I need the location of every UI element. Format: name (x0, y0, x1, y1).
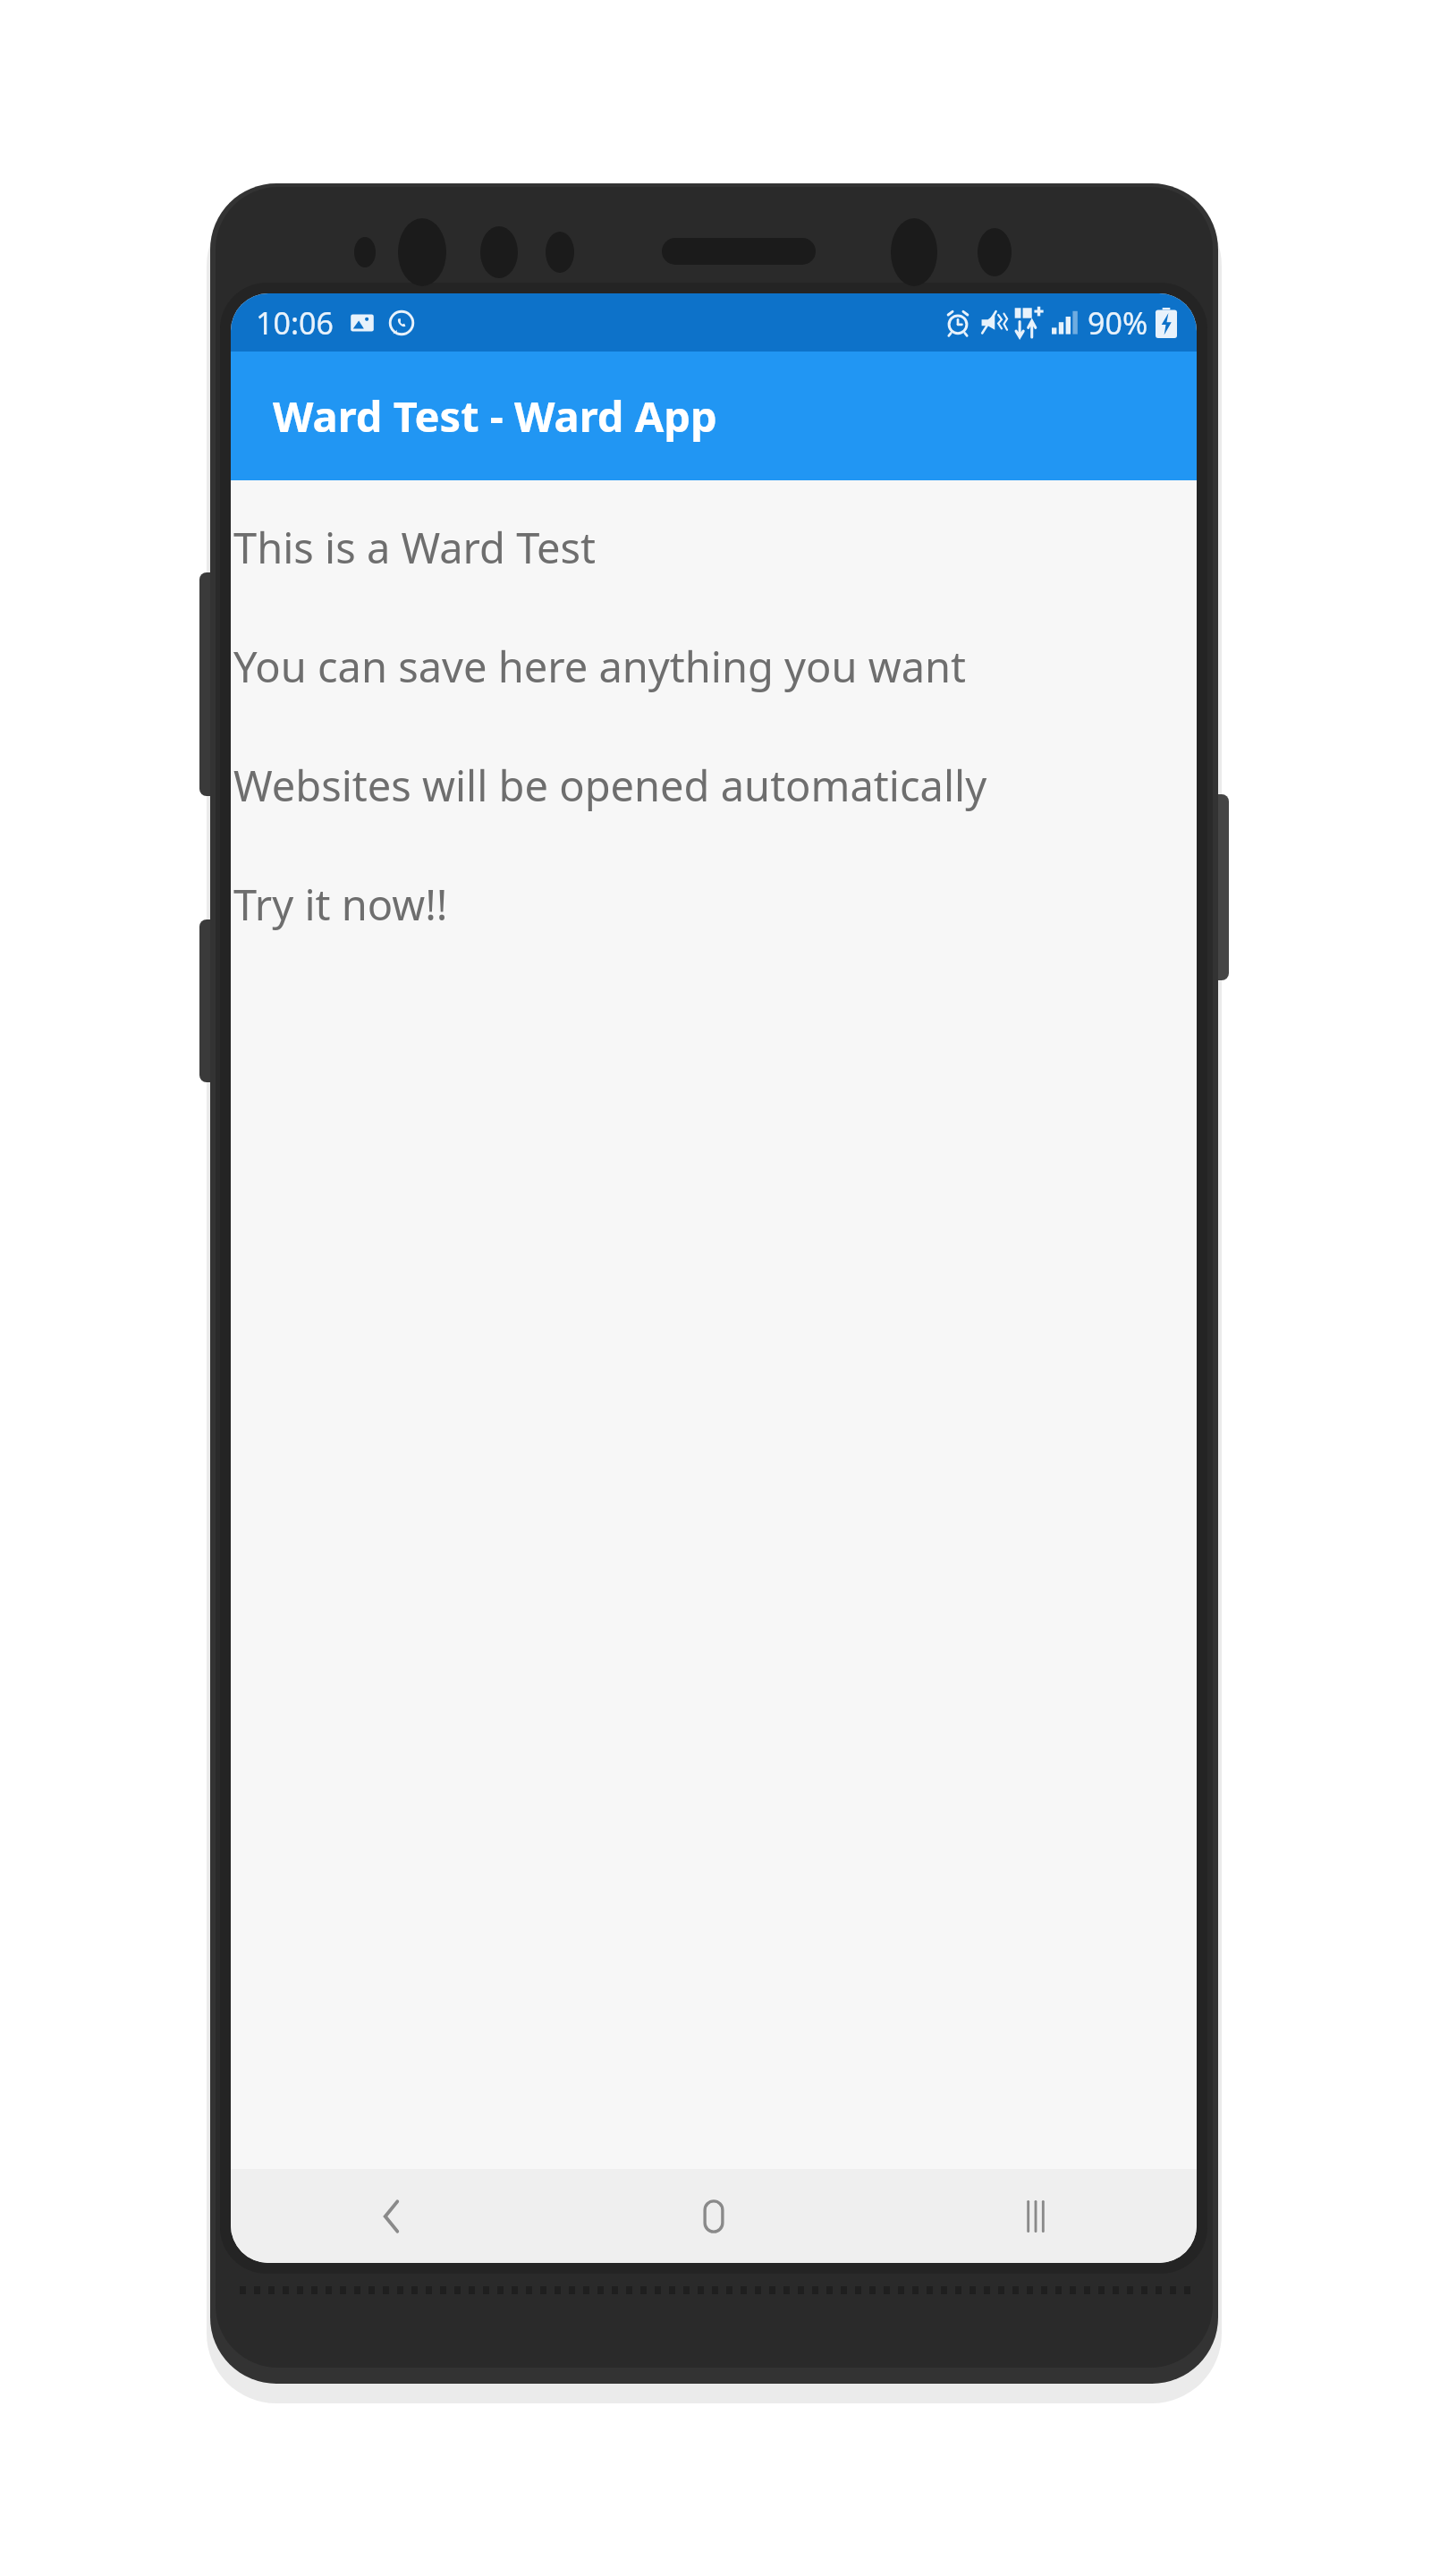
staticText: This is a Ward Test (233, 519, 597, 576)
staticText: Try it now!! (233, 876, 448, 933)
button[interactable]: This is a Ward Test (231, 487, 1197, 606)
button[interactable]: Recent apps (875, 2169, 1197, 2263)
staticText: 10:06 (256, 302, 334, 343)
button[interactable]: Home (553, 2169, 875, 2263)
staticText: Websites will be opened automatically (233, 757, 987, 814)
button[interactable]: Try it now!! (231, 844, 1197, 963)
button[interactable]: Websites will be opened automatically (231, 725, 1197, 844)
staticText: 90% (1088, 302, 1148, 343)
staticText: You can save here anything you want (233, 638, 967, 695)
button[interactable]: Back (231, 2169, 553, 2263)
button[interactable]: You can save here anything you want (231, 606, 1197, 725)
button[interactable]: Ward Test - Ward App (231, 352, 1197, 480)
staticText: Ward Test - Ward App (273, 387, 717, 445)
